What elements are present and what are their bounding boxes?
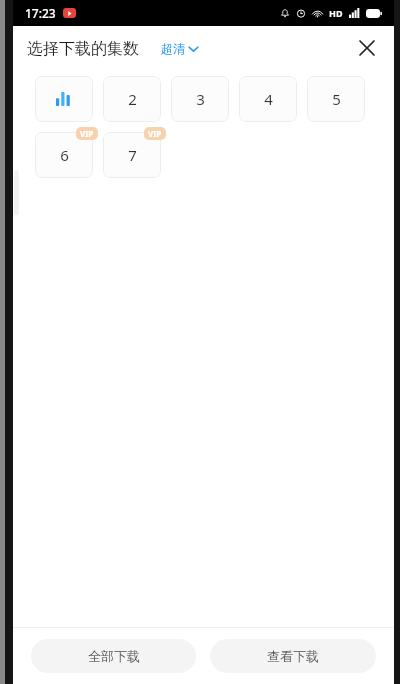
- button[interactable]: 5: [307, 76, 365, 122]
- button[interactable]: 7: [103, 132, 161, 178]
- staticText: 超清: [161, 41, 185, 56]
- button[interactable]: 查看下载: [210, 639, 376, 673]
- staticText: 选择下载的集数: [27, 39, 139, 59]
- staticText: 4: [264, 89, 273, 109]
- button[interactable]: Now playing episode 1: [35, 76, 93, 122]
- button[interactable]: Close: [350, 31, 384, 65]
- button[interactable]: 3: [171, 76, 229, 122]
- staticText: 6: [60, 145, 69, 165]
- button[interactable]: 6: [35, 132, 93, 178]
- button[interactable]: 4: [239, 76, 297, 122]
- button[interactable]: 2: [103, 76, 161, 122]
- staticText: 2: [128, 89, 137, 109]
- staticText: 3: [196, 89, 205, 109]
- button[interactable]: 全部下载: [31, 639, 196, 673]
- staticText: VIP: [80, 128, 94, 139]
- staticText: 全部下载: [88, 648, 140, 664]
- staticText: 查看下载: [267, 648, 319, 664]
- staticText: 17:23: [25, 5, 56, 21]
- staticText: 7: [128, 145, 137, 165]
- staticText: VIP: [148, 128, 162, 139]
- staticText: HD: [329, 7, 343, 19]
- button[interactable]: 超清: [159, 37, 200, 60]
- staticText: 5: [332, 89, 341, 109]
